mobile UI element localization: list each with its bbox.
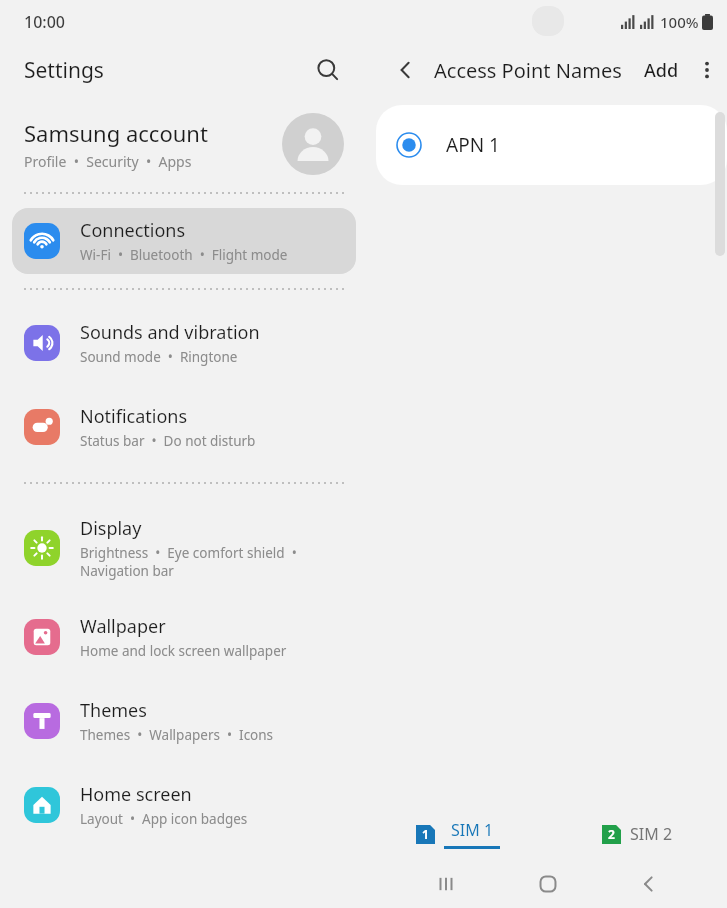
button[interactable]: APN 1 [376,105,727,185]
staticText: Brightness • Eye comfort shield • [80,544,297,562]
staticText: Samsung account [24,118,208,148]
button[interactable]: Notifications [12,394,356,460]
button[interactable]: Add [636,52,687,89]
button[interactable]: Search [306,48,350,92]
staticText: 2 [608,826,615,842]
staticText: 1 [422,826,429,842]
button[interactable]: Home screen [12,772,356,838]
button[interactable]: More options [687,50,727,90]
button[interactable]: Recents [422,860,470,908]
staticText: 100% [660,12,699,32]
staticText: Sounds and vibration [80,320,260,345]
staticText: SIM 2 [630,823,673,845]
button[interactable]: Home [524,860,572,908]
staticText: Navigation bar [80,562,174,580]
staticText: Status bar • Do not disturb [80,432,256,450]
staticText: Layout • App icon badges [80,810,248,828]
staticText: SIM 1 [451,819,494,841]
staticText: Wi-Fi • Bluetooth • Flight mode [80,246,288,264]
staticText: Wallpaper [80,614,166,639]
staticText: Notifications [80,404,188,429]
button[interactable]: Samsung account [0,96,368,192]
button[interactable]: Sounds and vibration [12,310,356,376]
staticText: Home screen [80,782,192,807]
button[interactable]: 2 [547,808,727,860]
staticText: 10:00 [24,11,65,33]
staticText: APN 1 [446,132,500,158]
button[interactable]: Wallpaper [12,604,356,670]
button[interactable]: Display [12,506,356,590]
staticText: Home and lock screen wallpaper [80,642,287,660]
staticText: Profile • Security • Apps [24,152,192,171]
button[interactable]: Back [625,860,673,908]
button[interactable]: 1 [368,808,547,860]
staticText: Connections [80,218,186,243]
staticText: Themes • Wallpapers • Icons [80,726,274,744]
button[interactable]: Back [386,50,426,90]
staticText: Settings [24,56,104,85]
button[interactable]: Connections [12,208,356,274]
staticText: Themes [80,698,147,723]
staticText: Add [644,58,679,83]
staticText: Sound mode • Ringtone [80,348,238,366]
staticText: Access Point Names [434,57,622,84]
staticText: Display [80,516,142,541]
button[interactable]: Themes [12,688,356,754]
